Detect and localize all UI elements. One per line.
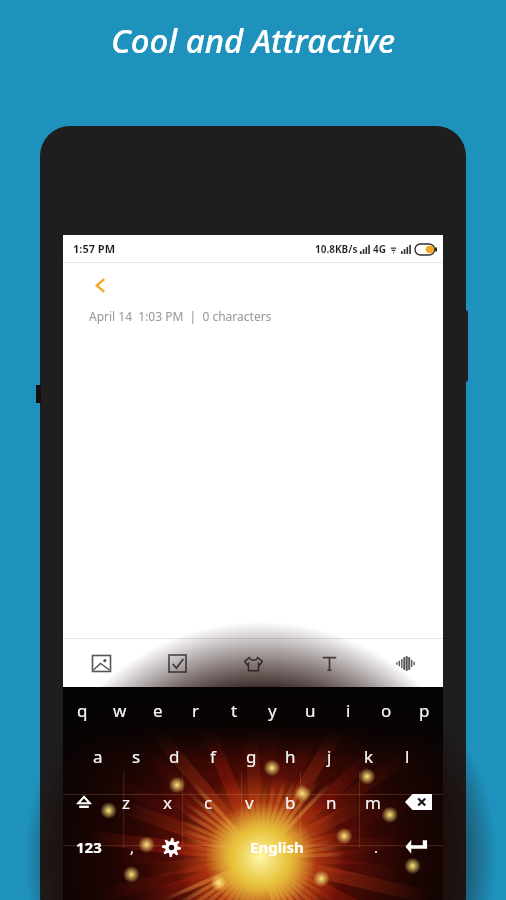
staticText: w: [113, 699, 127, 722]
staticText: i: [346, 699, 351, 722]
button[interactable]: d: [155, 741, 193, 771]
staticText: g: [246, 745, 257, 768]
button[interactable]: v: [229, 787, 270, 817]
button[interactable]: s: [117, 741, 155, 771]
staticText: .: [374, 837, 379, 857]
button[interactable]: ,: [115, 831, 149, 863]
staticText: ,: [130, 837, 135, 857]
button[interactable]: n: [311, 787, 352, 817]
staticText: b: [285, 791, 296, 814]
staticText: l: [405, 745, 410, 768]
button[interactable]: a: [79, 741, 117, 771]
staticText: c: [204, 791, 213, 814]
button[interactable]: g: [232, 741, 271, 771]
staticText: u: [305, 699, 316, 722]
button[interactable]: r: [177, 695, 215, 725]
staticText: English: [250, 837, 304, 857]
staticText: p: [419, 699, 430, 722]
button[interactable]: w: [101, 695, 139, 725]
staticText: j: [327, 745, 332, 768]
staticText: d: [169, 745, 180, 768]
staticText: s: [132, 745, 141, 768]
button[interactable]: i: [329, 695, 367, 725]
staticText: 1:57 PM: [73, 241, 116, 256]
staticText: h: [285, 745, 296, 768]
button[interactable]: f: [193, 741, 232, 771]
staticText: f: [210, 745, 216, 768]
button[interactable]: k: [349, 741, 388, 771]
button[interactable]: Backspace: [393, 787, 443, 817]
button[interactable]: o: [367, 695, 405, 725]
button[interactable]: English: [193, 831, 361, 863]
staticText: m: [365, 791, 381, 814]
button[interactable]: b: [270, 787, 311, 817]
button[interactable]: z: [105, 787, 147, 817]
staticText: o: [381, 699, 392, 722]
staticText: 4G: [373, 242, 386, 256]
staticText: April 14 1:03 PM | 0 characters: [89, 308, 272, 324]
button[interactable]: Keyboard settings: [149, 831, 193, 863]
staticText: Cool and Attractive: [111, 18, 395, 63]
staticText: x: [163, 791, 172, 814]
staticText: z: [122, 791, 130, 814]
button[interactable]: Shift: [63, 787, 105, 817]
button[interactable]: 123: [63, 831, 115, 863]
staticText: r: [192, 699, 200, 722]
staticText: 123: [76, 837, 102, 857]
button[interactable]: x: [147, 787, 188, 817]
button[interactable]: Insert image: [63, 639, 139, 687]
staticText: v: [245, 791, 254, 814]
button[interactable]: u: [291, 695, 329, 725]
button[interactable]: Text format: [291, 639, 367, 687]
button[interactable]: t: [215, 695, 253, 725]
button[interactable]: Theme: [215, 639, 291, 687]
staticText: n: [326, 791, 337, 814]
staticText: t: [231, 699, 238, 722]
button[interactable]: m: [352, 787, 393, 817]
button[interactable]: l: [388, 741, 427, 771]
button[interactable]: Voice: [367, 639, 443, 687]
button[interactable]: e: [139, 695, 177, 725]
staticText: e: [153, 699, 163, 722]
button[interactable]: Enter: [391, 831, 443, 863]
button[interactable]: Checklist: [139, 639, 215, 687]
button[interactable]: Back: [85, 270, 115, 300]
staticText: 10.8KB/s: [315, 242, 358, 256]
button[interactable]: y: [253, 695, 291, 725]
button[interactable]: j: [310, 741, 349, 771]
button[interactable]: p: [405, 695, 443, 725]
staticText: a: [93, 745, 103, 768]
staticText: y: [268, 699, 277, 722]
button[interactable]: c: [188, 787, 229, 817]
button[interactable]: .: [361, 831, 391, 863]
staticText: q: [77, 699, 88, 722]
staticText: k: [364, 745, 374, 768]
button[interactable]: q: [63, 695, 101, 725]
button[interactable]: h: [271, 741, 310, 771]
